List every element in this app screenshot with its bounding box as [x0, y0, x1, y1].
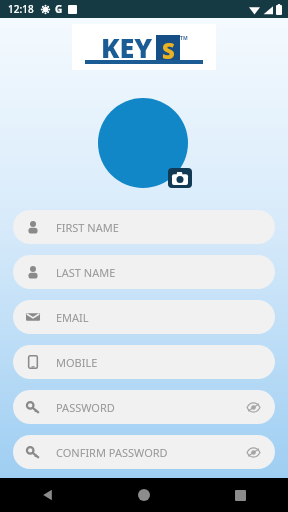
button[interactable]: EMAIL [13, 300, 275, 334]
staticText: KEY [101, 29, 153, 66]
button[interactable]: Change profile photo [98, 98, 190, 190]
staticText: EMAIL [56, 310, 262, 325]
staticText: CONFIRM PASSWORD [56, 445, 244, 460]
button[interactable]: Back [0, 478, 96, 512]
staticText: TM [180, 35, 188, 42]
staticText: 12:18 [8, 2, 34, 16]
staticText: G [55, 2, 63, 16]
button[interactable]: PASSWORD [13, 390, 275, 424]
staticText: S [162, 35, 175, 61]
button[interactable]: FIRST NAME [13, 210, 275, 244]
button[interactable]: MOBILE [13, 345, 275, 379]
staticText: MOBILE [56, 355, 262, 370]
button[interactable]: Toggle password visibility [244, 398, 262, 416]
button[interactable]: Toggle password visibility [244, 443, 262, 461]
staticText: LAST NAME [56, 265, 262, 280]
button[interactable]: CONFIRM PASSWORD [13, 435, 275, 469]
button[interactable]: Home [96, 478, 192, 512]
button[interactable]: LAST NAME [13, 255, 275, 289]
staticText: FIRST NAME [56, 220, 262, 235]
staticText: PASSWORD [56, 400, 244, 415]
button[interactable]: Recent apps [192, 478, 288, 512]
